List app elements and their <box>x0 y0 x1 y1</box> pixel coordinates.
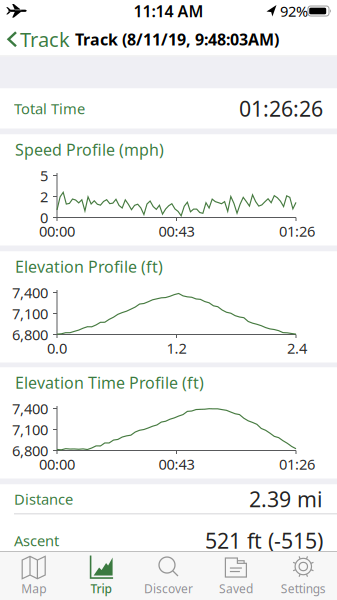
button[interactable]: Back <box>0 26 70 53</box>
staticText: 2.39 mi <box>249 485 323 513</box>
staticText: 0 <box>40 208 48 227</box>
staticText: Track <box>20 26 70 53</box>
staticText: Ascent <box>14 531 59 550</box>
staticText: 2.4 <box>287 338 307 358</box>
staticText: Map <box>21 580 46 596</box>
staticText: 6,800 <box>12 325 48 344</box>
staticText: 7,400 <box>12 399 48 418</box>
staticText: Total Time <box>14 99 85 118</box>
button[interactable]: Discover <box>135 551 202 600</box>
staticText: 2 <box>40 187 48 206</box>
staticText: 92% <box>280 1 308 21</box>
staticText: Discover <box>144 580 193 596</box>
staticText: 01:26 <box>279 454 315 474</box>
staticText: 11:14 AM <box>133 0 203 22</box>
staticText: 1.2 <box>166 338 186 358</box>
staticText: Saved <box>219 580 253 596</box>
staticText: 01:26:26 <box>239 94 323 123</box>
staticText: 521 ft (-515) <box>205 526 323 555</box>
staticText: 00:43 <box>158 221 194 241</box>
staticText: 00:00 <box>39 454 75 474</box>
staticText: Trip <box>91 580 112 596</box>
button[interactable]: Settings <box>270 551 337 600</box>
staticText: 5 <box>40 166 48 185</box>
button[interactable]: Map <box>0 551 67 600</box>
button[interactable]: Saved <box>202 551 270 600</box>
staticText: 0.0 <box>47 338 67 358</box>
staticText: 7,400 <box>12 283 48 302</box>
button[interactable]: Trip <box>67 551 135 600</box>
staticText: 00:00 <box>39 221 75 241</box>
staticText: 6,800 <box>12 441 48 460</box>
staticText: Speed Profile (mph) <box>15 139 164 160</box>
staticText: 7,100 <box>12 304 48 323</box>
staticText: 7,100 <box>12 420 48 439</box>
staticText: Track (8/11/19, 9:48:03AM) <box>75 29 279 50</box>
staticText: Elevation Time Profile (ft) <box>15 372 204 393</box>
staticText: Settings <box>281 580 326 596</box>
staticText: Elevation Profile (ft) <box>15 256 163 277</box>
staticText: 01:26 <box>279 221 315 241</box>
staticText: 00:43 <box>158 454 194 474</box>
staticText: Distance <box>14 489 73 509</box>
